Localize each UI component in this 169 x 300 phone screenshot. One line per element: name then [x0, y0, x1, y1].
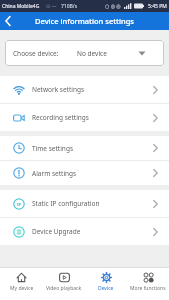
staticText: Device Upgrade — [32, 227, 81, 236]
staticText: Recording settings — [32, 113, 89, 122]
button[interactable]: More functions — [127, 268, 169, 300]
button[interactable]: Alarm settings — [0, 161, 169, 185]
staticText: Video playback — [46, 285, 82, 292]
staticText: ○ ◎ ◎ — [105, 3, 121, 10]
staticText: Device information settings — [35, 16, 134, 26]
staticText: Time settings — [32, 144, 74, 153]
staticText: China Mobile4G — [2, 3, 40, 10]
staticText: Device — [98, 285, 114, 292]
button[interactable]: Time settings — [0, 136, 169, 160]
button[interactable] — [0, 12, 12, 30]
staticText: No device — [77, 49, 107, 58]
staticText: Alarm settings — [32, 169, 77, 178]
staticText: 710B/s — [61, 3, 78, 10]
button[interactable]: Device Upgrade — [0, 218, 169, 245]
staticText: Static IP configuration — [32, 199, 100, 208]
staticText: ⊙ — — [46, 3, 57, 10]
staticText: Choose device: — [13, 49, 59, 58]
staticText: More functions — [130, 285, 166, 292]
button[interactable]: Choose device: — [5, 40, 164, 66]
button[interactable]: Device — [85, 268, 127, 300]
staticText: IP — [17, 202, 22, 207]
staticText: My device — [10, 285, 34, 292]
staticText: Network settings — [32, 85, 85, 94]
button[interactable]: Network settings — [0, 76, 169, 103]
button[interactable]: My device — [0, 268, 43, 300]
button[interactable]: Video playback — [43, 268, 85, 300]
button[interactable]: Recording settings — [0, 104, 169, 131]
button[interactable]: IP — [0, 190, 169, 217]
staticText: 5:45 PM — [148, 3, 167, 10]
